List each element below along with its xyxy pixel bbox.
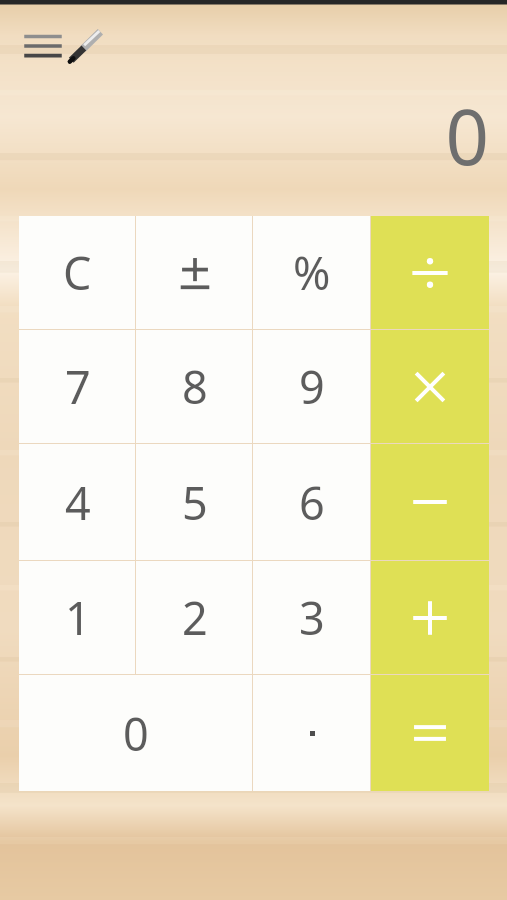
staticText: 8 [182, 356, 208, 417]
button[interactable]: 5 [136, 444, 253, 560]
button[interactable]: Divide [371, 216, 489, 329]
button[interactable]: 0 [19, 675, 253, 791]
staticText: 0 [19, 84, 489, 188]
staticText: 7 [65, 356, 91, 417]
staticText: % [293, 242, 331, 303]
button[interactable]: Multiply [371, 330, 489, 443]
button[interactable]: Menu [26, 33, 60, 59]
staticText: 4 [65, 472, 91, 533]
staticText: 6 [299, 472, 325, 533]
button[interactable]: 7 [19, 330, 136, 443]
staticText: 1 [65, 587, 91, 648]
button[interactable]: 4 [19, 444, 136, 560]
button[interactable]: 3 [253, 561, 371, 674]
button[interactable]: Equals [371, 675, 489, 791]
button[interactable]: Subtract [371, 444, 489, 560]
button[interactable]: 9 [253, 330, 371, 443]
button[interactable]: C [19, 216, 136, 329]
button[interactable]: Plus minus [136, 216, 253, 329]
staticText: 9 [299, 356, 325, 417]
staticText: 0 [123, 703, 149, 764]
staticText: 3 [299, 587, 325, 648]
button[interactable]: 1 [19, 561, 136, 674]
button[interactable]: Decimal point [253, 675, 371, 791]
button[interactable]: Add [371, 561, 489, 674]
button[interactable]: Edit [68, 29, 104, 63]
staticText: 2 [182, 587, 208, 648]
staticText: 5 [182, 472, 208, 533]
staticText: C [63, 242, 92, 303]
button[interactable]: % [253, 216, 371, 329]
button[interactable]: 6 [253, 444, 371, 560]
button[interactable]: 2 [136, 561, 253, 674]
button[interactable]: 8 [136, 330, 253, 443]
